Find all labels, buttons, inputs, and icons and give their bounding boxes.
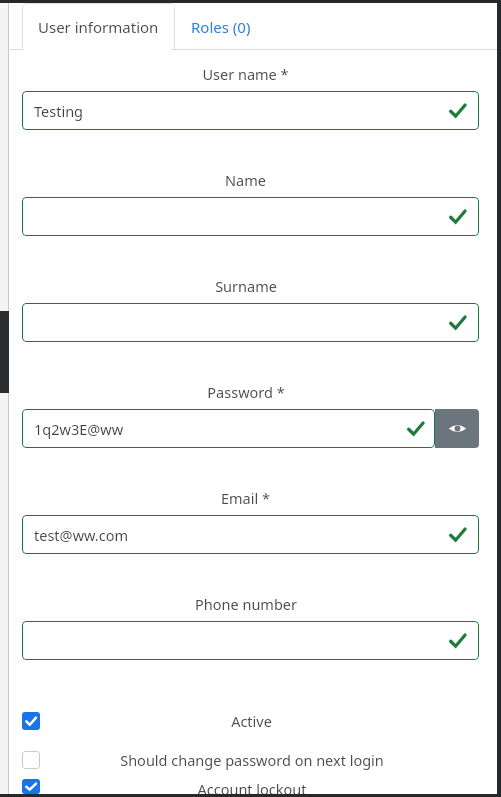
button[interactable]: Should change password on next login [10, 740, 497, 779]
staticText: test@ww.com [34, 525, 129, 545]
button[interactable]: test@ww.com [22, 515, 479, 554]
staticText: Email * [221, 488, 270, 508]
button[interactable]: Testing [22, 91, 479, 130]
button[interactable]: 1q2w3E@ww [22, 409, 435, 448]
staticText: User information [38, 17, 159, 37]
button[interactable]: Roles (0) [175, 3, 267, 50]
button[interactable] [22, 621, 479, 660]
staticText: User name * [202, 64, 289, 84]
staticText: Surname [215, 276, 277, 296]
button[interactable]: Show password [435, 409, 479, 448]
staticText: 1q2w3E@ww [34, 419, 124, 439]
staticText: Active [231, 711, 272, 731]
staticText: Name [225, 170, 266, 190]
staticText: Roles (0) [191, 17, 251, 37]
staticText: Testing [34, 101, 84, 121]
button[interactable]: User information [22, 3, 175, 50]
button[interactable]: Account lockout [10, 779, 497, 794]
staticText: Account lockout [197, 779, 307, 794]
staticText: Phone number [195, 594, 297, 614]
staticText: Should change password on next login [120, 750, 384, 770]
button[interactable] [22, 303, 479, 342]
button[interactable] [22, 197, 479, 236]
staticText: Password * [207, 382, 285, 402]
button[interactable]: Active [10, 701, 497, 740]
